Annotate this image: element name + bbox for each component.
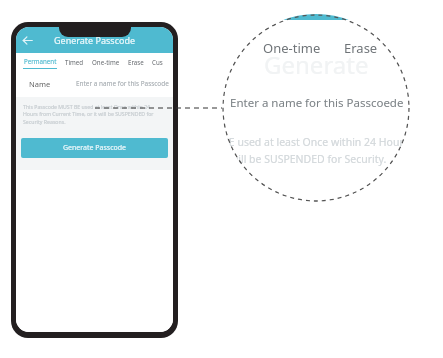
staticText: Enter a name for this Passcoede xyxy=(230,95,404,111)
staticText: BE used at least Once within 24 Hours xyxy=(222,135,409,149)
staticText: This Passcode MUST BE used at least Once… xyxy=(23,103,166,125)
button[interactable]: Back xyxy=(20,33,35,48)
button[interactable]: Cus xyxy=(148,53,167,70)
staticText: Timed xyxy=(65,58,84,66)
button[interactable]: Name xyxy=(16,70,173,97)
button[interactable]: Permanent xyxy=(19,53,61,70)
staticText: Name xyxy=(29,79,51,89)
staticText: will be SUSPENDED for Security. xyxy=(230,152,387,166)
staticText: Enter a name for this Passcode xyxy=(76,79,169,88)
staticText: Generate xyxy=(264,48,369,81)
staticText: Erase xyxy=(128,58,144,66)
button[interactable]: Erase xyxy=(344,39,378,57)
button[interactable]: One-time xyxy=(88,53,124,70)
staticText: Generate Passcode xyxy=(63,143,127,153)
button[interactable]: Generate Passcode xyxy=(21,138,168,158)
button[interactable]: Erase xyxy=(124,53,148,70)
staticText: Generate Passcode xyxy=(54,34,136,46)
staticText: Permanent xyxy=(24,57,57,65)
staticText: Cus xyxy=(152,58,163,66)
button[interactable]: Timed xyxy=(61,53,88,70)
staticText: One-time xyxy=(92,58,120,66)
button[interactable]: One-time xyxy=(263,39,321,57)
